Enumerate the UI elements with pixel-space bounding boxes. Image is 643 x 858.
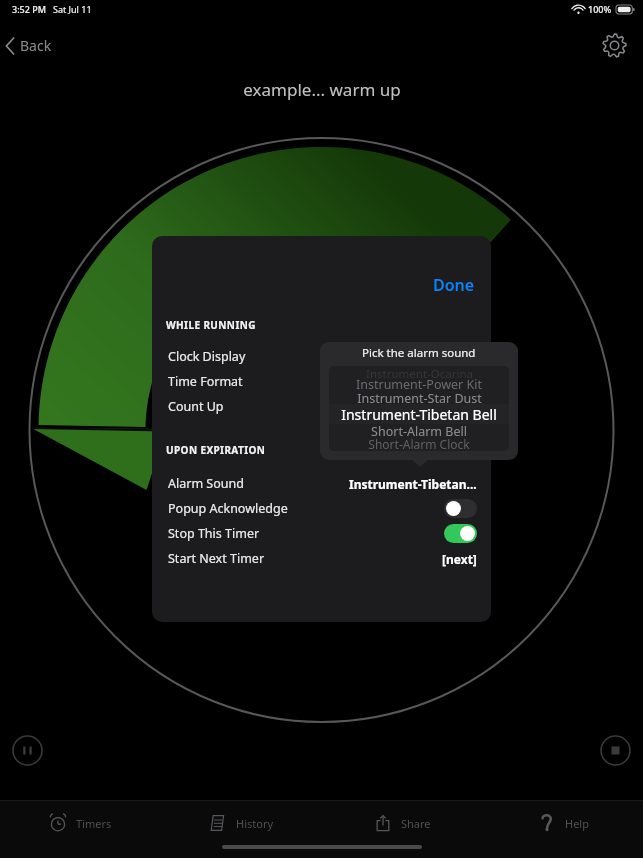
button[interactable]: Instrument-Ocarina xyxy=(329,366,509,380)
button[interactable]: Done xyxy=(417,268,491,302)
staticText: Back xyxy=(20,36,52,55)
staticText: 100% xyxy=(588,3,612,15)
staticText: Short-Alarm Bell xyxy=(371,423,467,437)
staticText: Count Up xyxy=(168,398,224,415)
button[interactable]: Instrument-Power Kit xyxy=(329,376,509,390)
button[interactable]: Instrument-Tibetan Bell xyxy=(329,404,509,424)
button[interactable]: Alarm Sound xyxy=(152,471,491,496)
button[interactable]: Time Format xyxy=(152,369,491,394)
staticText: Instrument-Tibetan Bell xyxy=(341,405,497,424)
staticText: Alarm Sound xyxy=(168,475,244,492)
staticText: Done xyxy=(433,274,475,296)
button[interactable]: History xyxy=(160,801,321,845)
staticText: Instrument-Power Kit xyxy=(356,376,482,390)
staticText: Short-Beep 1 xyxy=(384,448,455,451)
button[interactable]: Instrument-Star Dust xyxy=(329,390,509,404)
button[interactable]: Short-Alarm Bell xyxy=(329,423,509,437)
staticText: Pick the alarm sound xyxy=(362,345,476,361)
staticText: UPON EXPIRATION xyxy=(166,443,266,457)
button[interactable]: Pause xyxy=(12,735,43,766)
button[interactable]: Short-Alarm Clock xyxy=(329,436,509,450)
staticText: Instrument-Star Dust xyxy=(357,390,482,404)
staticText: Popup Acknowledge xyxy=(168,500,288,517)
button[interactable]: Short-Beep 1 xyxy=(329,448,509,451)
staticText: Start Next Timer xyxy=(168,550,265,567)
button[interactable]: Stop This Timer xyxy=(152,521,491,546)
button[interactable]: Count Up xyxy=(152,394,491,419)
button[interactable]: Start Next Timer xyxy=(152,546,491,571)
button[interactable]: Help xyxy=(482,801,643,845)
staticText: Time Format xyxy=(168,373,243,390)
button[interactable]: Share xyxy=(321,801,482,845)
staticText: Sat Jul 11 xyxy=(53,3,92,15)
button[interactable]: Popup Acknowledge xyxy=(152,496,491,521)
button[interactable]: Settings xyxy=(597,28,631,62)
staticText: Short-Alarm Clock xyxy=(368,436,470,450)
staticText: [next] xyxy=(442,551,477,567)
staticText: History xyxy=(236,816,274,831)
button[interactable]: Timers xyxy=(0,801,160,845)
staticText: WHILE RUNNING xyxy=(166,318,256,332)
staticText: 3:52 PM xyxy=(12,3,46,15)
staticText: Share xyxy=(401,816,431,831)
staticText: Timers xyxy=(76,816,112,831)
staticText: Clock Display xyxy=(168,348,246,365)
button[interactable]: Back xyxy=(0,30,66,61)
staticText: Instrument-Ocarina xyxy=(366,366,473,380)
staticText: Help xyxy=(565,816,589,831)
staticText: Stop This Timer xyxy=(168,525,260,542)
button[interactable]: Clock Display xyxy=(152,344,491,369)
staticText: Instrument-Tibetan... xyxy=(349,476,477,492)
staticText: example... warm up xyxy=(243,78,401,101)
button[interactable]: Stop xyxy=(600,735,631,766)
